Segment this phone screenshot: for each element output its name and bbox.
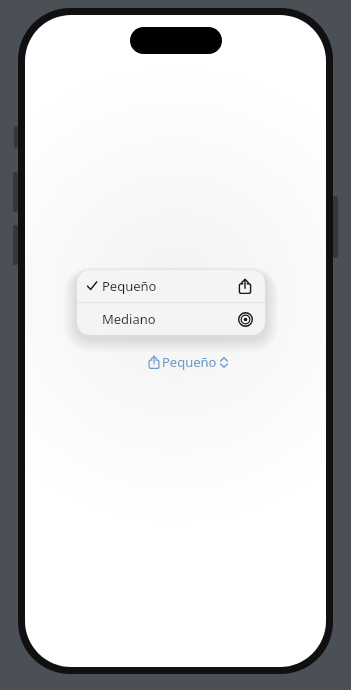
staticText: Pequeño [102, 277, 157, 295]
other: Compartir [147, 355, 161, 369]
button[interactable]: Mediano [77, 303, 265, 335]
button[interactable]: Pequeño [77, 270, 265, 302]
staticText: Mediano [102, 310, 156, 328]
button[interactable]: Compartir [145, 352, 230, 372]
other: Mediano [238, 312, 253, 327]
staticText: Pequeño [162, 353, 217, 371]
other: Compartir [237, 278, 253, 294]
